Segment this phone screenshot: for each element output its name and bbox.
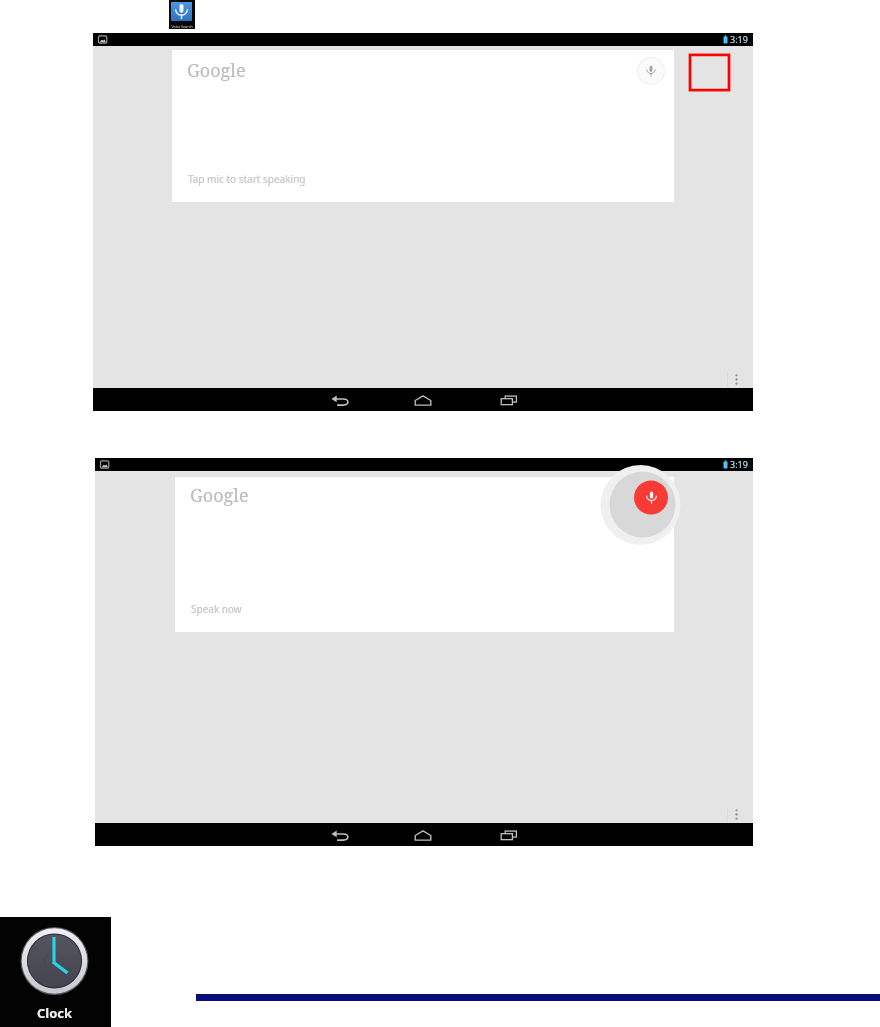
button[interactable]: Recent apps <box>486 388 530 411</box>
button[interactable]: More options <box>729 807 742 822</box>
button[interactable]: Microphone <box>637 57 665 85</box>
staticText: Google <box>190 483 249 508</box>
button[interactable]: Recent apps <box>486 823 530 846</box>
button[interactable]: Clock app <box>0 917 111 1027</box>
button[interactable]: Back <box>318 388 362 411</box>
staticText: 3:19 <box>730 458 748 470</box>
staticText: Google <box>187 58 246 83</box>
button[interactable]: Back <box>318 823 362 846</box>
staticText: Speak now <box>191 602 242 616</box>
button[interactable]: Microphone <box>175 477 674 632</box>
staticText: Voice Search <box>170 24 194 29</box>
button[interactable]: More options <box>729 372 742 387</box>
staticText: Clock <box>37 1004 73 1022</box>
button[interactable]: Voice Search app <box>169 0 195 29</box>
button[interactable]: Home <box>401 388 445 411</box>
staticText: Tap mic to start speaking <box>188 172 306 186</box>
staticText: 3:19 <box>730 33 748 45</box>
button[interactable]: Home <box>401 823 445 846</box>
